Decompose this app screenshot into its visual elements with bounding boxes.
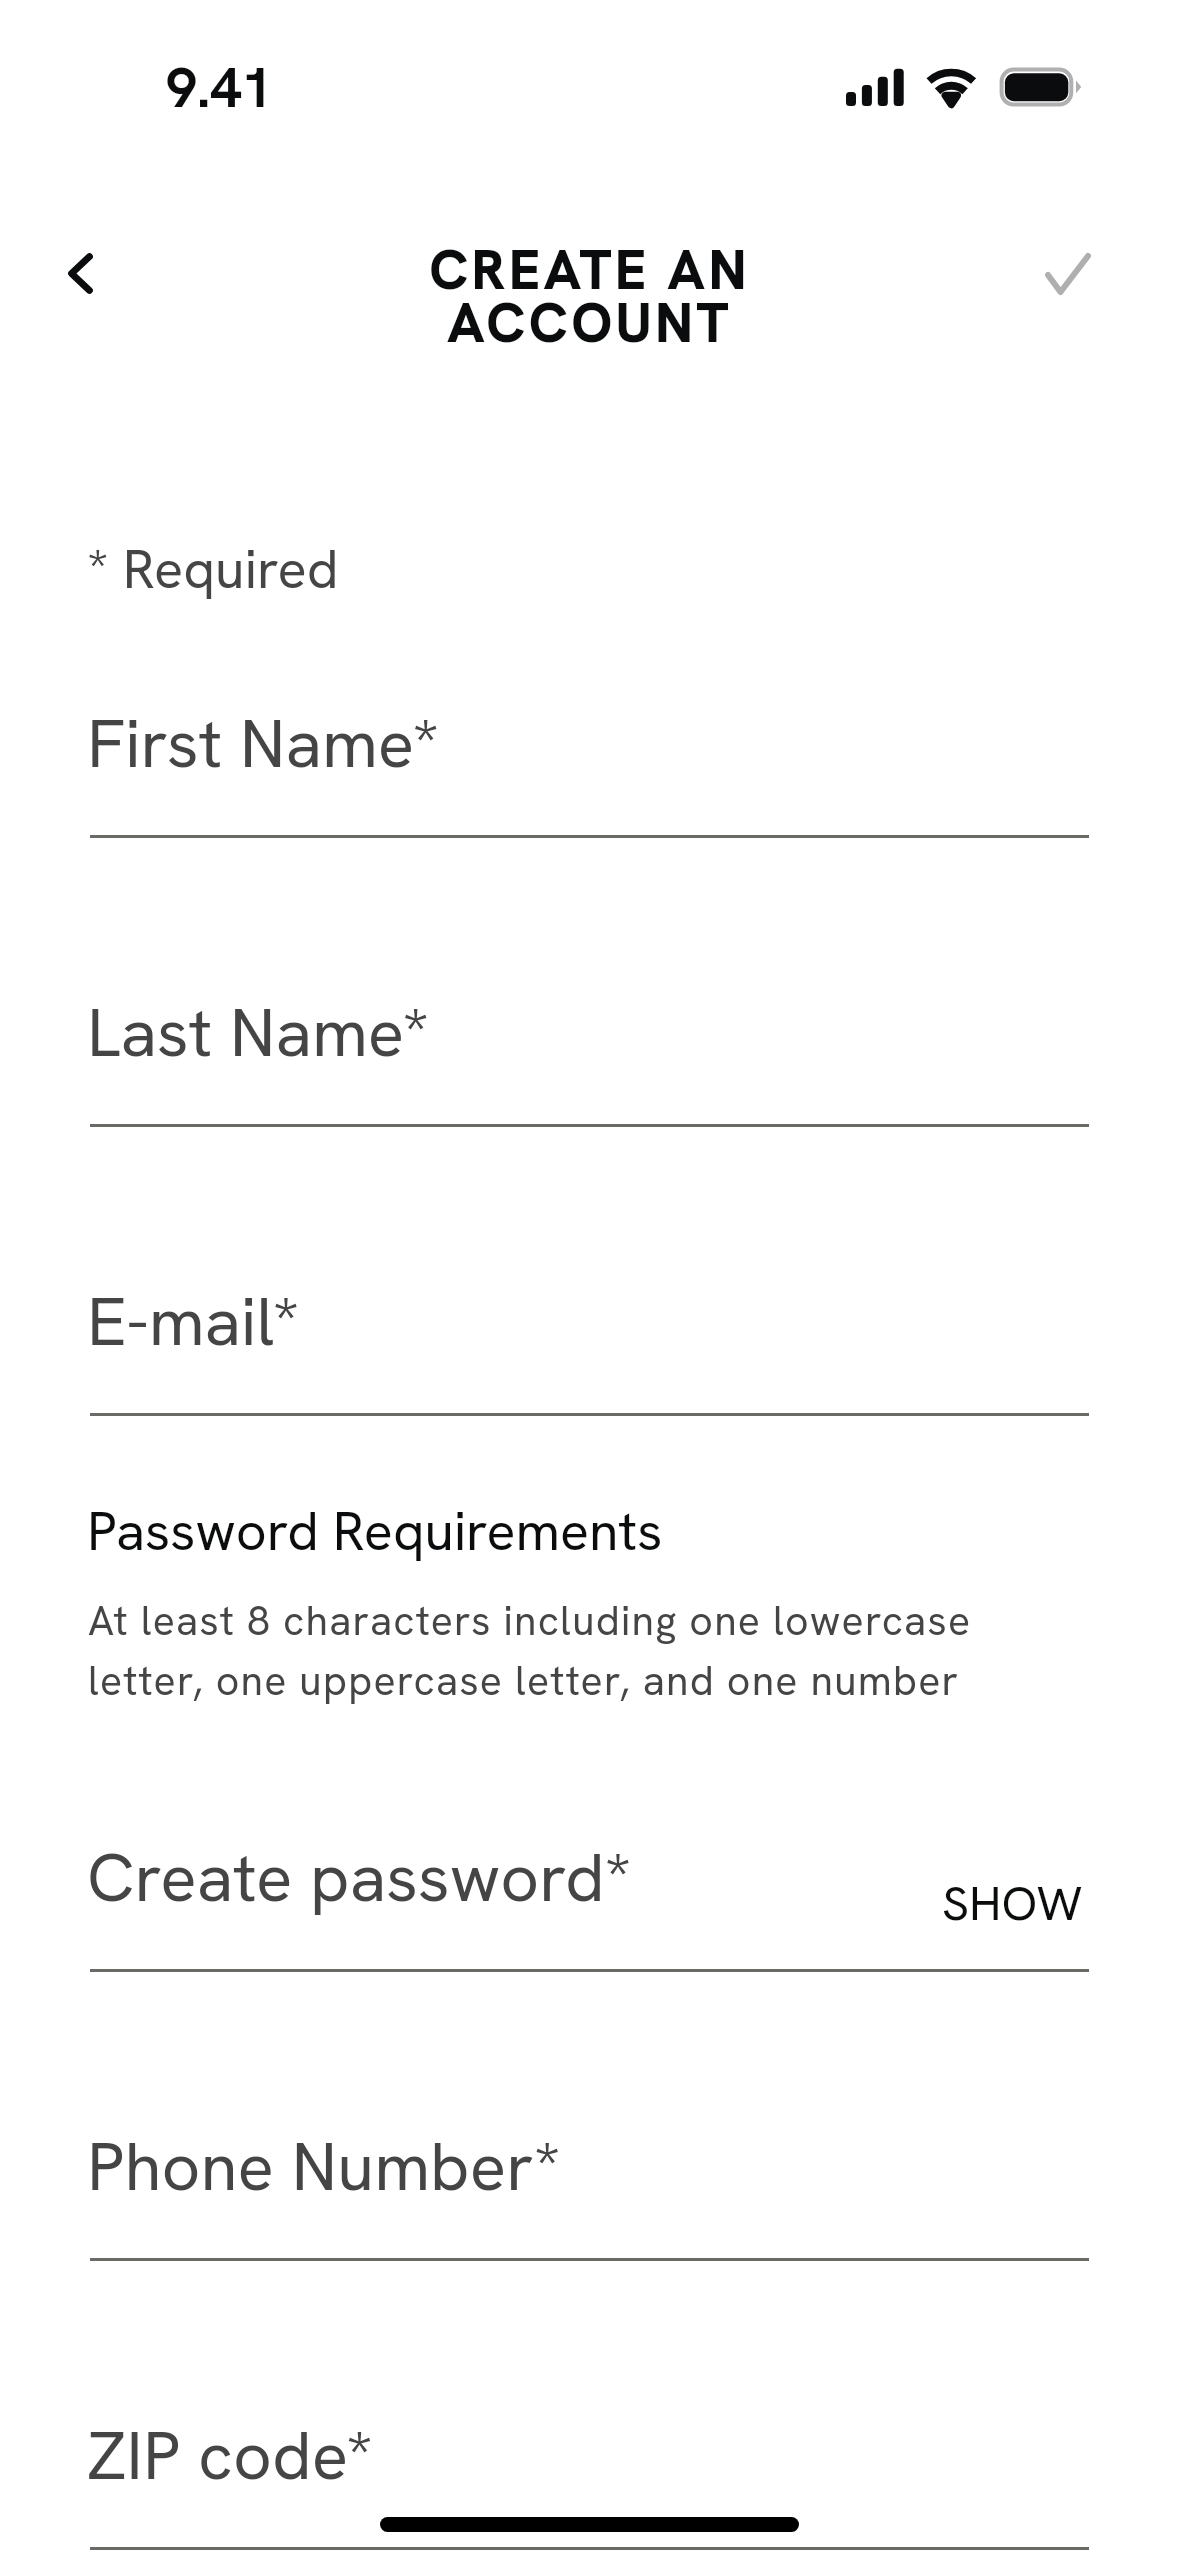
button[interactable]: First Name* (90, 723, 1089, 838)
button[interactable]: Back (28, 233, 110, 315)
button[interactable]: Phone Number* (90, 2146, 1089, 2261)
button[interactable]: E-mail* (90, 1301, 1089, 1416)
button[interactable]: Create password* (90, 1857, 1089, 1972)
staticText: At least 8 characters including one lowe… (88, 1594, 972, 1647)
staticText: ZIP code* (87, 2411, 373, 2499)
staticText: First Name* (87, 699, 440, 787)
staticText: 9.41 (166, 51, 273, 123)
staticText: Phone Number* (87, 2122, 561, 2210)
staticText: Password Requirements (87, 1496, 663, 1566)
staticText: Last Name* (87, 988, 430, 1076)
staticText: * Required (87, 534, 339, 605)
staticText: letter, one uppercase letter, and one nu… (88, 1654, 960, 1707)
button[interactable]: SHOW (922, 1856, 1102, 1948)
button[interactable]: Last Name* (90, 1012, 1089, 1127)
staticText: Create password* (87, 1833, 632, 1921)
button[interactable]: Done (1018, 234, 1098, 314)
button[interactable]: ZIP code* (90, 2435, 1089, 2550)
staticText: SHOW (942, 1872, 1083, 1935)
staticText: E-mail* (87, 1277, 300, 1365)
staticText: CREATE AN ACCOUNT (0, 234, 1179, 359)
